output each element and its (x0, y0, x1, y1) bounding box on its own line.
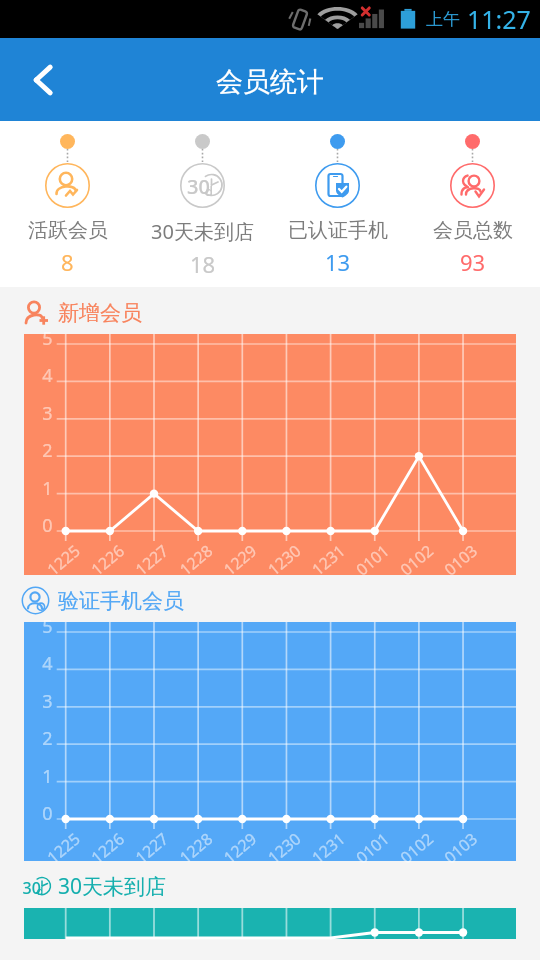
staticText: 11:27 (467, 2, 531, 36)
staticText: 已认证手机 (288, 218, 388, 243)
button[interactable]: 验证手机会员 (21, 586, 184, 615)
staticText: 30天未到店 (151, 218, 254, 245)
button[interactable]: 已认证手机 (270, 121, 405, 287)
staticText: 验证手机会员 (58, 588, 184, 614)
button[interactable]: 活跃会员 (0, 121, 135, 287)
staticText: 会员统计 (216, 65, 324, 99)
staticText: 18 (190, 249, 216, 279)
staticText: 上午 (426, 9, 460, 30)
staticText: 8 (61, 247, 74, 277)
button[interactable]: 会员总数 (405, 121, 540, 287)
staticText: 活跃会员 (28, 218, 108, 243)
staticText: 30天未到店 (58, 872, 167, 901)
button[interactable]: Back (0, 38, 86, 121)
staticText: 新增会员 (58, 300, 142, 326)
button[interactable]: 30天未到店 (21, 872, 167, 901)
button[interactable]: 新增会员 (21, 298, 142, 327)
staticText: 93 (460, 247, 486, 277)
button[interactable]: 30天未到店 (135, 121, 270, 287)
staticText: 13 (325, 247, 351, 277)
staticText: 会员总数 (433, 218, 513, 243)
